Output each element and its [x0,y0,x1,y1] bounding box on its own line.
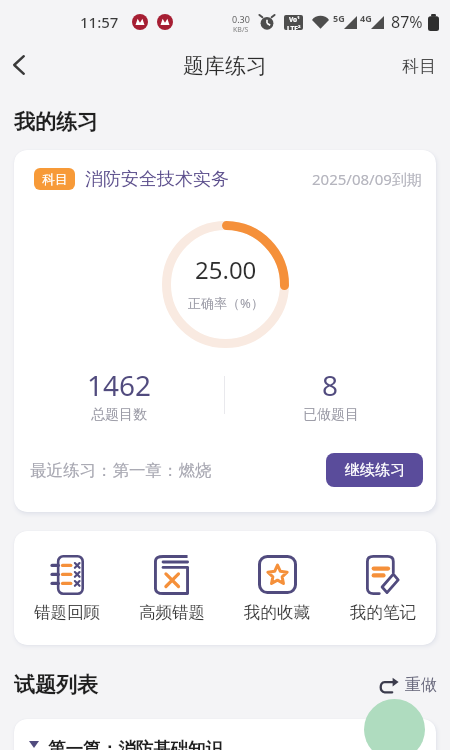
staticText: 5G [333,12,345,24]
staticText: 第一篇：消防基础知识 [48,738,223,750]
button[interactable]: 我的笔记 [330,554,436,623]
staticText: 0.30 [232,13,250,25]
staticText: 题库练习 [183,53,267,79]
staticText: 高频错题 [139,602,205,623]
staticText: 试题列表 [14,672,98,698]
staticText: 总题目数 [91,406,147,424]
staticText: 科目 [402,56,436,77]
button[interactable]: 科目 [14,150,436,512]
staticText: 科目 [42,171,68,187]
staticText: 87% [391,11,423,33]
staticText: 我的练习 [14,109,98,135]
staticText: 我的收藏 [244,602,310,623]
button[interactable]: 继续练习 [326,453,423,487]
staticText: 消防安全技术实务 [85,168,229,190]
staticText: 继续练习 [345,461,405,480]
button[interactable]: 重做 [379,675,437,695]
button[interactable]: 高频错题 [119,554,224,623]
staticText: KB/S [233,25,249,32]
staticText: Vo¹ [289,15,300,24]
staticText: 2025/08/09到期 [312,169,422,189]
button[interactable]: 科目 [388,46,450,87]
staticText: 正确率（%） [188,294,264,312]
staticText: 我的笔记 [350,602,416,623]
staticText: 最近练习：第一章：燃烧 [30,460,212,481]
staticText: 重做 [405,675,437,695]
button[interactable]: 我的收藏 [224,554,330,623]
button[interactable]: 第一篇：消防基础知识 [14,719,436,750]
staticText: 25.00 [195,253,257,286]
staticText: 8 [322,366,339,404]
button[interactable]: Scroll to top [364,699,425,750]
staticText: 已做题目 [303,406,359,424]
staticText: 1462 [87,366,152,404]
staticText: LTE² [287,24,301,30]
staticText: 错题回顾 [34,602,100,623]
button[interactable]: 错题回顾 [14,554,119,623]
button[interactable]: Back [0,42,42,88]
staticText: 4G [360,12,372,24]
staticText: 11:57 [80,12,119,32]
